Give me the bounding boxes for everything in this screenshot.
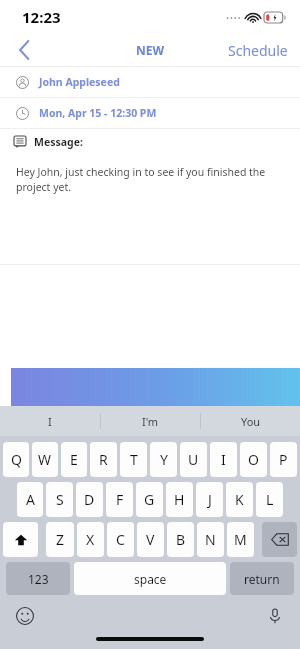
- staticText: B: [176, 530, 186, 549]
- staticText: 12:23: [22, 7, 61, 27]
- button[interactable]: 123: [6, 562, 70, 595]
- staticText: T: [130, 450, 138, 469]
- staticText: O: [248, 450, 259, 469]
- button[interactable]: X: [77, 522, 104, 557]
- button[interactable]: Emoji: [14, 605, 36, 627]
- staticText: G: [144, 490, 155, 509]
- button[interactable]: Mon, Apr 15 - 12:30 PM: [0, 98, 300, 128]
- staticText: NEW: [136, 42, 165, 58]
- button[interactable]: O: [240, 442, 267, 477]
- button[interactable]: Shift: [3, 522, 38, 557]
- button[interactable]: F: [106, 482, 133, 517]
- staticText: F: [116, 490, 124, 509]
- staticText: J: [208, 490, 212, 509]
- button[interactable]: N: [197, 522, 224, 557]
- staticText: You: [241, 414, 261, 429]
- button[interactable]: Back: [0, 34, 48, 66]
- button[interactable]: T: [120, 442, 147, 477]
- staticText: Mon, Apr 15 - 12:30 PM: [39, 106, 157, 120]
- staticText: P: [279, 450, 288, 469]
- staticText: X: [86, 530, 95, 549]
- button[interactable]: V: [137, 522, 164, 557]
- staticText: N: [205, 530, 216, 549]
- button[interactable]: E: [61, 442, 87, 477]
- button[interactable]: [11, 368, 300, 406]
- button[interactable]: Z: [46, 522, 74, 557]
- button[interactable]: B: [167, 522, 194, 557]
- button[interactable]: D: [76, 482, 103, 517]
- staticText: I: [48, 414, 52, 429]
- button[interactable]: W: [32, 442, 58, 477]
- button[interactable]: K: [226, 482, 253, 517]
- staticText: D: [84, 490, 95, 509]
- staticText: Schedule: [228, 41, 288, 60]
- button[interactable]: P: [270, 442, 297, 477]
- button[interactable]: John Appleseed: [0, 67, 300, 97]
- staticText: L: [266, 490, 274, 509]
- staticText: R: [99, 450, 108, 469]
- button[interactable]: Dictation: [264, 605, 286, 627]
- button[interactable]: space: [74, 562, 226, 595]
- button[interactable]: return: [230, 562, 294, 595]
- button[interactable]: U: [180, 442, 207, 477]
- staticText: E: [70, 450, 78, 469]
- button[interactable]: I'm: [101, 406, 200, 436]
- button[interactable]: J: [196, 482, 223, 517]
- staticText: Z: [56, 530, 65, 549]
- button[interactable]: I: [210, 442, 237, 477]
- button[interactable]: C: [107, 522, 134, 557]
- staticText: H: [174, 490, 185, 509]
- button[interactable]: H: [166, 482, 193, 517]
- staticText: W: [38, 450, 52, 469]
- staticText: K: [235, 490, 244, 509]
- staticText: C: [116, 530, 125, 549]
- button[interactable]: A: [17, 482, 43, 517]
- staticText: 123: [28, 571, 49, 587]
- staticText: M: [234, 530, 247, 549]
- staticText: A: [26, 490, 35, 509]
- staticText: Y: [160, 450, 168, 469]
- staticText: return: [244, 571, 280, 587]
- staticText: Q: [11, 450, 22, 469]
- button[interactable]: Schedule: [216, 34, 300, 66]
- staticText: S: [56, 490, 64, 509]
- button[interactable]: Q: [3, 442, 29, 477]
- button[interactable]: You: [201, 406, 300, 436]
- staticText: John Appleseed: [39, 75, 120, 89]
- button[interactable]: M: [227, 522, 254, 557]
- staticText: I'm: [142, 414, 159, 429]
- button[interactable]: Backspace: [262, 522, 297, 557]
- button[interactable]: S: [46, 482, 73, 517]
- staticText: Hey John, just checking in to see if you…: [16, 165, 282, 194]
- staticText: V: [146, 530, 155, 549]
- staticText: Message:: [34, 135, 83, 149]
- staticText: space: [134, 571, 167, 587]
- staticText: I: [221, 450, 226, 469]
- button[interactable]: I: [0, 406, 100, 436]
- button[interactable]: Y: [150, 442, 177, 477]
- button[interactable]: R: [90, 442, 117, 477]
- staticText: U: [188, 450, 199, 469]
- button[interactable]: L: [256, 482, 283, 517]
- button[interactable]: G: [136, 482, 163, 517]
